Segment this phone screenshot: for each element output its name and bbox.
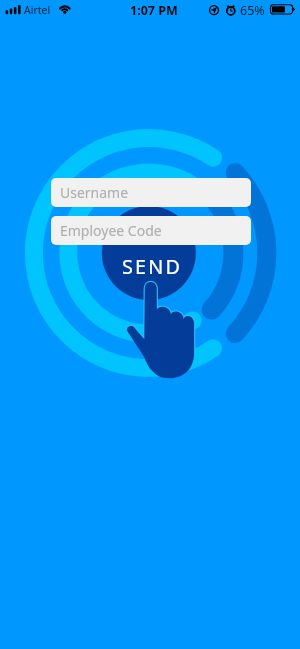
staticText: Airtel xyxy=(24,3,51,17)
staticText: 1:07 PM xyxy=(130,2,178,19)
button[interactable]: Employee Code xyxy=(51,216,251,245)
button[interactable]: Username xyxy=(51,178,251,207)
staticText: SEND xyxy=(122,253,183,280)
button[interactable]: SEND xyxy=(102,206,196,300)
staticText: Employee Code xyxy=(60,221,162,240)
staticText: Username xyxy=(60,183,129,202)
staticText: 65% xyxy=(240,2,265,19)
